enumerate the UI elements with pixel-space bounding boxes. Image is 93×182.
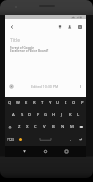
button[interactable]: More options bbox=[75, 81, 85, 91]
button[interactable]: B bbox=[49, 121, 58, 133]
button[interactable]: Y bbox=[46, 97, 54, 109]
button[interactable]: Delete bbox=[76, 121, 86, 133]
staticText: H bbox=[52, 112, 56, 118]
staticText: M bbox=[70, 124, 74, 130]
button[interactable]: . bbox=[67, 133, 75, 146]
button[interactable]: P bbox=[78, 97, 86, 109]
button[interactable]: Shift bbox=[5, 121, 15, 133]
button[interactable]: C bbox=[31, 121, 40, 133]
staticText: W bbox=[16, 100, 20, 106]
button[interactable]: J bbox=[58, 109, 66, 121]
button[interactable]: Space bbox=[24, 133, 67, 146]
button[interactable]: D bbox=[26, 109, 34, 121]
button[interactable]: S bbox=[18, 109, 26, 121]
staticText: Title bbox=[10, 37, 20, 44]
staticText: Forest of Google bbox=[10, 46, 35, 50]
button[interactable]: I bbox=[62, 97, 70, 109]
button[interactable]: N bbox=[58, 121, 67, 133]
staticText: Y bbox=[49, 100, 52, 106]
staticText: C bbox=[34, 124, 37, 130]
button[interactable]: H bbox=[50, 109, 58, 121]
staticText: G bbox=[44, 112, 48, 118]
button[interactable]: G bbox=[42, 109, 50, 121]
staticText: D bbox=[28, 112, 32, 118]
button[interactable]: M bbox=[67, 121, 76, 133]
staticText: Excellence of Voice Board!! bbox=[10, 49, 49, 53]
button[interactable]: X bbox=[23, 121, 31, 133]
staticText: R bbox=[33, 100, 36, 106]
staticText: L bbox=[77, 112, 80, 118]
staticText: Edited 10:30 PM bbox=[31, 84, 59, 89]
button[interactable]: L bbox=[74, 109, 82, 121]
staticText: F bbox=[37, 112, 40, 118]
staticText: X bbox=[26, 124, 29, 130]
staticText: ?123 bbox=[7, 138, 14, 142]
button[interactable]: Pin note bbox=[55, 22, 65, 32]
button[interactable]: O bbox=[70, 97, 78, 109]
staticText: Z bbox=[18, 124, 21, 130]
staticText: O bbox=[72, 100, 76, 106]
button[interactable]: Enter bbox=[75, 133, 86, 146]
staticText: A bbox=[12, 112, 15, 118]
button[interactable]: Emoji bbox=[16, 133, 24, 146]
staticText: Q bbox=[8, 100, 12, 106]
staticText: K bbox=[69, 112, 72, 118]
button[interactable]: E bbox=[22, 97, 30, 109]
button[interactable]: V bbox=[40, 121, 49, 133]
staticText: B bbox=[52, 124, 55, 130]
button[interactable]: R bbox=[30, 97, 38, 109]
staticText: V bbox=[43, 124, 46, 130]
staticText: E bbox=[25, 100, 28, 106]
button[interactable]: Back bbox=[6, 21, 17, 32]
staticText: P bbox=[81, 100, 84, 106]
staticText: S bbox=[21, 112, 24, 118]
button[interactable]: Recent apps bbox=[61, 146, 72, 157]
button[interactable]: A bbox=[9, 109, 18, 121]
staticText: J bbox=[61, 112, 63, 118]
button[interactable]: Home bbox=[40, 146, 51, 157]
button[interactable]: U bbox=[54, 97, 62, 109]
staticText: T bbox=[41, 100, 44, 106]
button[interactable]: F bbox=[34, 109, 42, 121]
button[interactable]: Back bbox=[19, 146, 30, 157]
button[interactable]: Z bbox=[15, 121, 23, 133]
button[interactable]: ?123 bbox=[5, 133, 16, 146]
staticText: I bbox=[65, 100, 67, 106]
staticText: U bbox=[56, 100, 60, 106]
button[interactable]: Account bbox=[75, 22, 85, 32]
button[interactable]: Add bbox=[6, 81, 16, 91]
button[interactable]: W bbox=[14, 97, 22, 109]
button[interactable]: K bbox=[66, 109, 74, 121]
staticText: N bbox=[61, 124, 65, 130]
button[interactable]: Q bbox=[5, 97, 14, 109]
button[interactable]: Collaborator bbox=[65, 22, 75, 32]
staticText: . bbox=[70, 137, 72, 142]
button[interactable]: T bbox=[38, 97, 46, 109]
